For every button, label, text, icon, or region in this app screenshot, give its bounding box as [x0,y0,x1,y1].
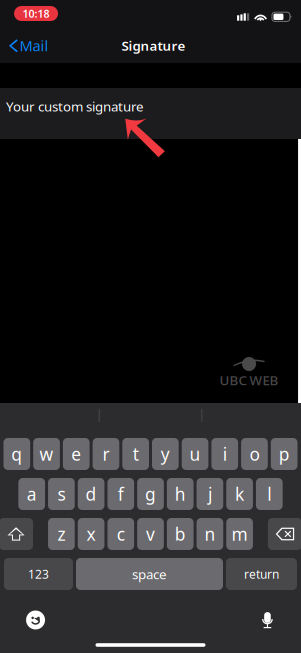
button[interactable]: i [211,438,238,470]
staticText: 10:18 [23,6,50,21]
button[interactable]: b [167,518,194,550]
staticText: v [146,522,155,545]
staticText: u [190,442,201,465]
staticText: r [102,442,109,465]
staticText: 123 [28,566,49,582]
button[interactable]: k [226,478,253,510]
button[interactable]: s [48,478,75,510]
staticText: a [27,482,37,505]
button[interactable]: v [137,518,164,550]
button[interactable]: f [107,478,134,510]
staticText: g [145,482,156,505]
button[interactable]: a [18,478,45,510]
button[interactable]: Dictation [253,604,282,636]
button[interactable]: z [48,518,75,550]
button[interactable]: t [122,438,149,470]
button[interactable]: l [256,478,283,510]
staticText: w [40,442,54,465]
staticText: p [279,442,290,465]
staticText: Signature [121,37,185,54]
button[interactable]: h [167,478,194,510]
staticText: Mail [20,36,49,55]
button[interactable]: g [137,478,164,510]
button[interactable]: return [226,558,297,590]
staticText: k [235,482,244,505]
button[interactable]: o [241,438,268,470]
staticText: UBC WEB [220,371,279,389]
staticText: n [204,522,215,545]
button[interactable]: Your custom signature [0,88,301,139]
button[interactable]: q [3,438,30,470]
button[interactable]: space [76,558,223,590]
staticText: d [86,482,97,505]
button[interactable]: e [63,438,90,470]
button[interactable]: y [152,438,179,470]
staticText: b [175,522,186,545]
button[interactable]: m [226,518,253,550]
button[interactable]: x [78,518,104,550]
staticText: c [117,522,125,545]
button[interactable]: 123 [4,558,73,590]
button[interactable]: n [197,518,223,550]
staticText: Your custom signature [6,97,144,115]
staticText: m [232,522,248,545]
button[interactable]: j [197,478,223,510]
button[interactable]: p [271,438,297,470]
button[interactable]: r [93,438,119,470]
button[interactable]: Mail [0,30,59,61]
staticText: i [223,442,227,465]
button[interactable]: Shift [0,518,33,550]
button[interactable]: Emoji keyboard [19,603,52,636]
staticText: j [208,482,212,505]
staticText: z [57,522,65,545]
staticText: return [244,566,279,582]
staticText: t [133,442,139,465]
button[interactable]: w [33,438,60,470]
staticText: s [57,482,65,505]
staticText: f [118,482,124,505]
staticText: l [267,482,271,505]
button[interactable]: u [182,438,208,470]
button[interactable]: d [78,478,104,510]
staticText: space [132,565,167,583]
staticText: o [249,442,259,465]
button[interactable]: Delete [268,518,301,550]
staticText: q [11,442,22,465]
button[interactable]: c [107,518,134,550]
staticText: h [175,482,186,505]
staticText: y [161,442,170,465]
staticText: x [87,522,96,545]
staticText: e [71,442,81,465]
